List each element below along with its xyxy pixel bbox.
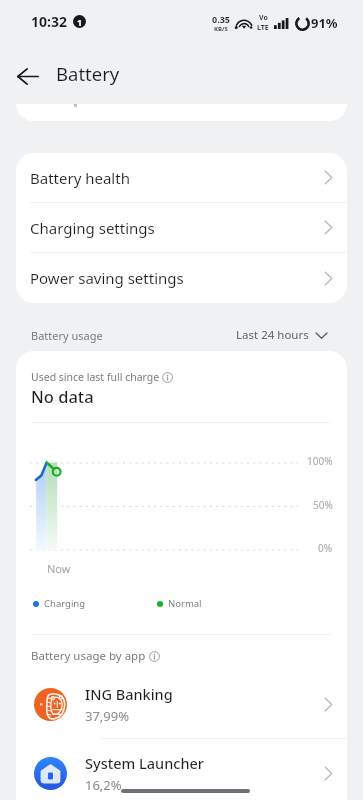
staticText: Normal [168, 597, 202, 610]
button[interactable]: Power saving settings [16, 253, 347, 303]
staticText: System Launcher [85, 753, 204, 773]
button[interactable]: Battery health [16, 153, 347, 203]
staticText: Power saving settings [30, 268, 184, 288]
staticText: 10:32 [31, 12, 67, 31]
button[interactable]: Charging settings [16, 203, 347, 253]
staticText: Battery [56, 61, 120, 86]
staticText: 50% [313, 498, 333, 512]
button[interactable]: System Launcher [16, 739, 347, 800]
staticText: 16,2% [85, 776, 122, 794]
staticText: Used since last full charge [31, 370, 160, 384]
staticText: 1 [77, 16, 83, 28]
button[interactable]: ING Banking [16, 670, 347, 738]
staticText: Now [47, 561, 71, 576]
button[interactable]: Back [7, 55, 49, 97]
staticText: 0.35 [212, 13, 230, 25]
staticText: 37,99% [85, 707, 130, 725]
staticText: LTE [257, 23, 269, 33]
staticText: KB/S [214, 25, 228, 33]
staticText: 0% [318, 541, 333, 555]
staticText: ING Banking [85, 684, 173, 704]
staticText: Battery health [30, 168, 130, 188]
staticText: 91% [311, 14, 338, 32]
button[interactable]: Last 24 hours [232, 324, 331, 346]
staticText: 100% [307, 454, 333, 468]
staticText: No data [31, 385, 94, 407]
staticText: Charging [44, 597, 86, 610]
staticText: Last 24 hours [236, 327, 309, 343]
staticText: Battery usage by app [31, 648, 146, 664]
staticText: Vo [259, 13, 268, 23]
staticText: Charging settings [30, 218, 155, 238]
staticText: Battery usage [31, 328, 103, 343]
